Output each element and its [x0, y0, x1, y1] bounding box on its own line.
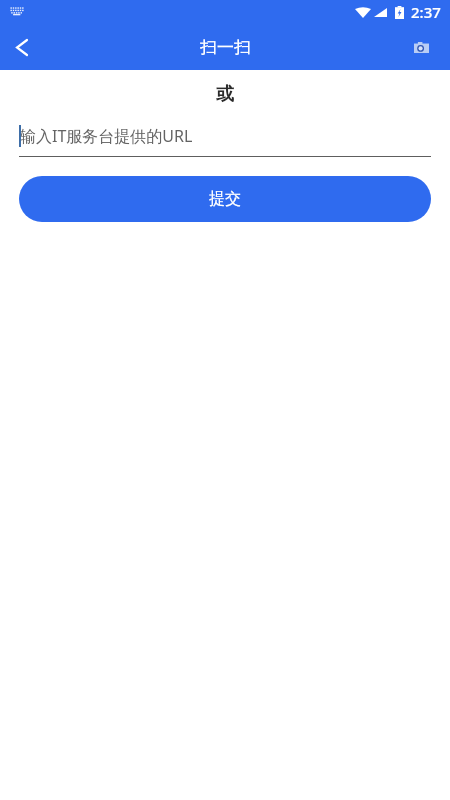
- button[interactable]: Back: [0, 25, 44, 69]
- button[interactable]: 输入IT服务台提供的URL: [19, 119, 431, 157]
- staticText: 2:37: [411, 2, 441, 22]
- staticText: 扫一扫: [200, 37, 251, 58]
- button[interactable]: 提交: [19, 176, 431, 222]
- staticText: 输入IT服务台提供的URL: [20, 125, 193, 147]
- staticText: 提交: [209, 189, 241, 209]
- button[interactable]: Open camera: [399, 25, 443, 69]
- staticText: 或: [0, 83, 450, 106]
